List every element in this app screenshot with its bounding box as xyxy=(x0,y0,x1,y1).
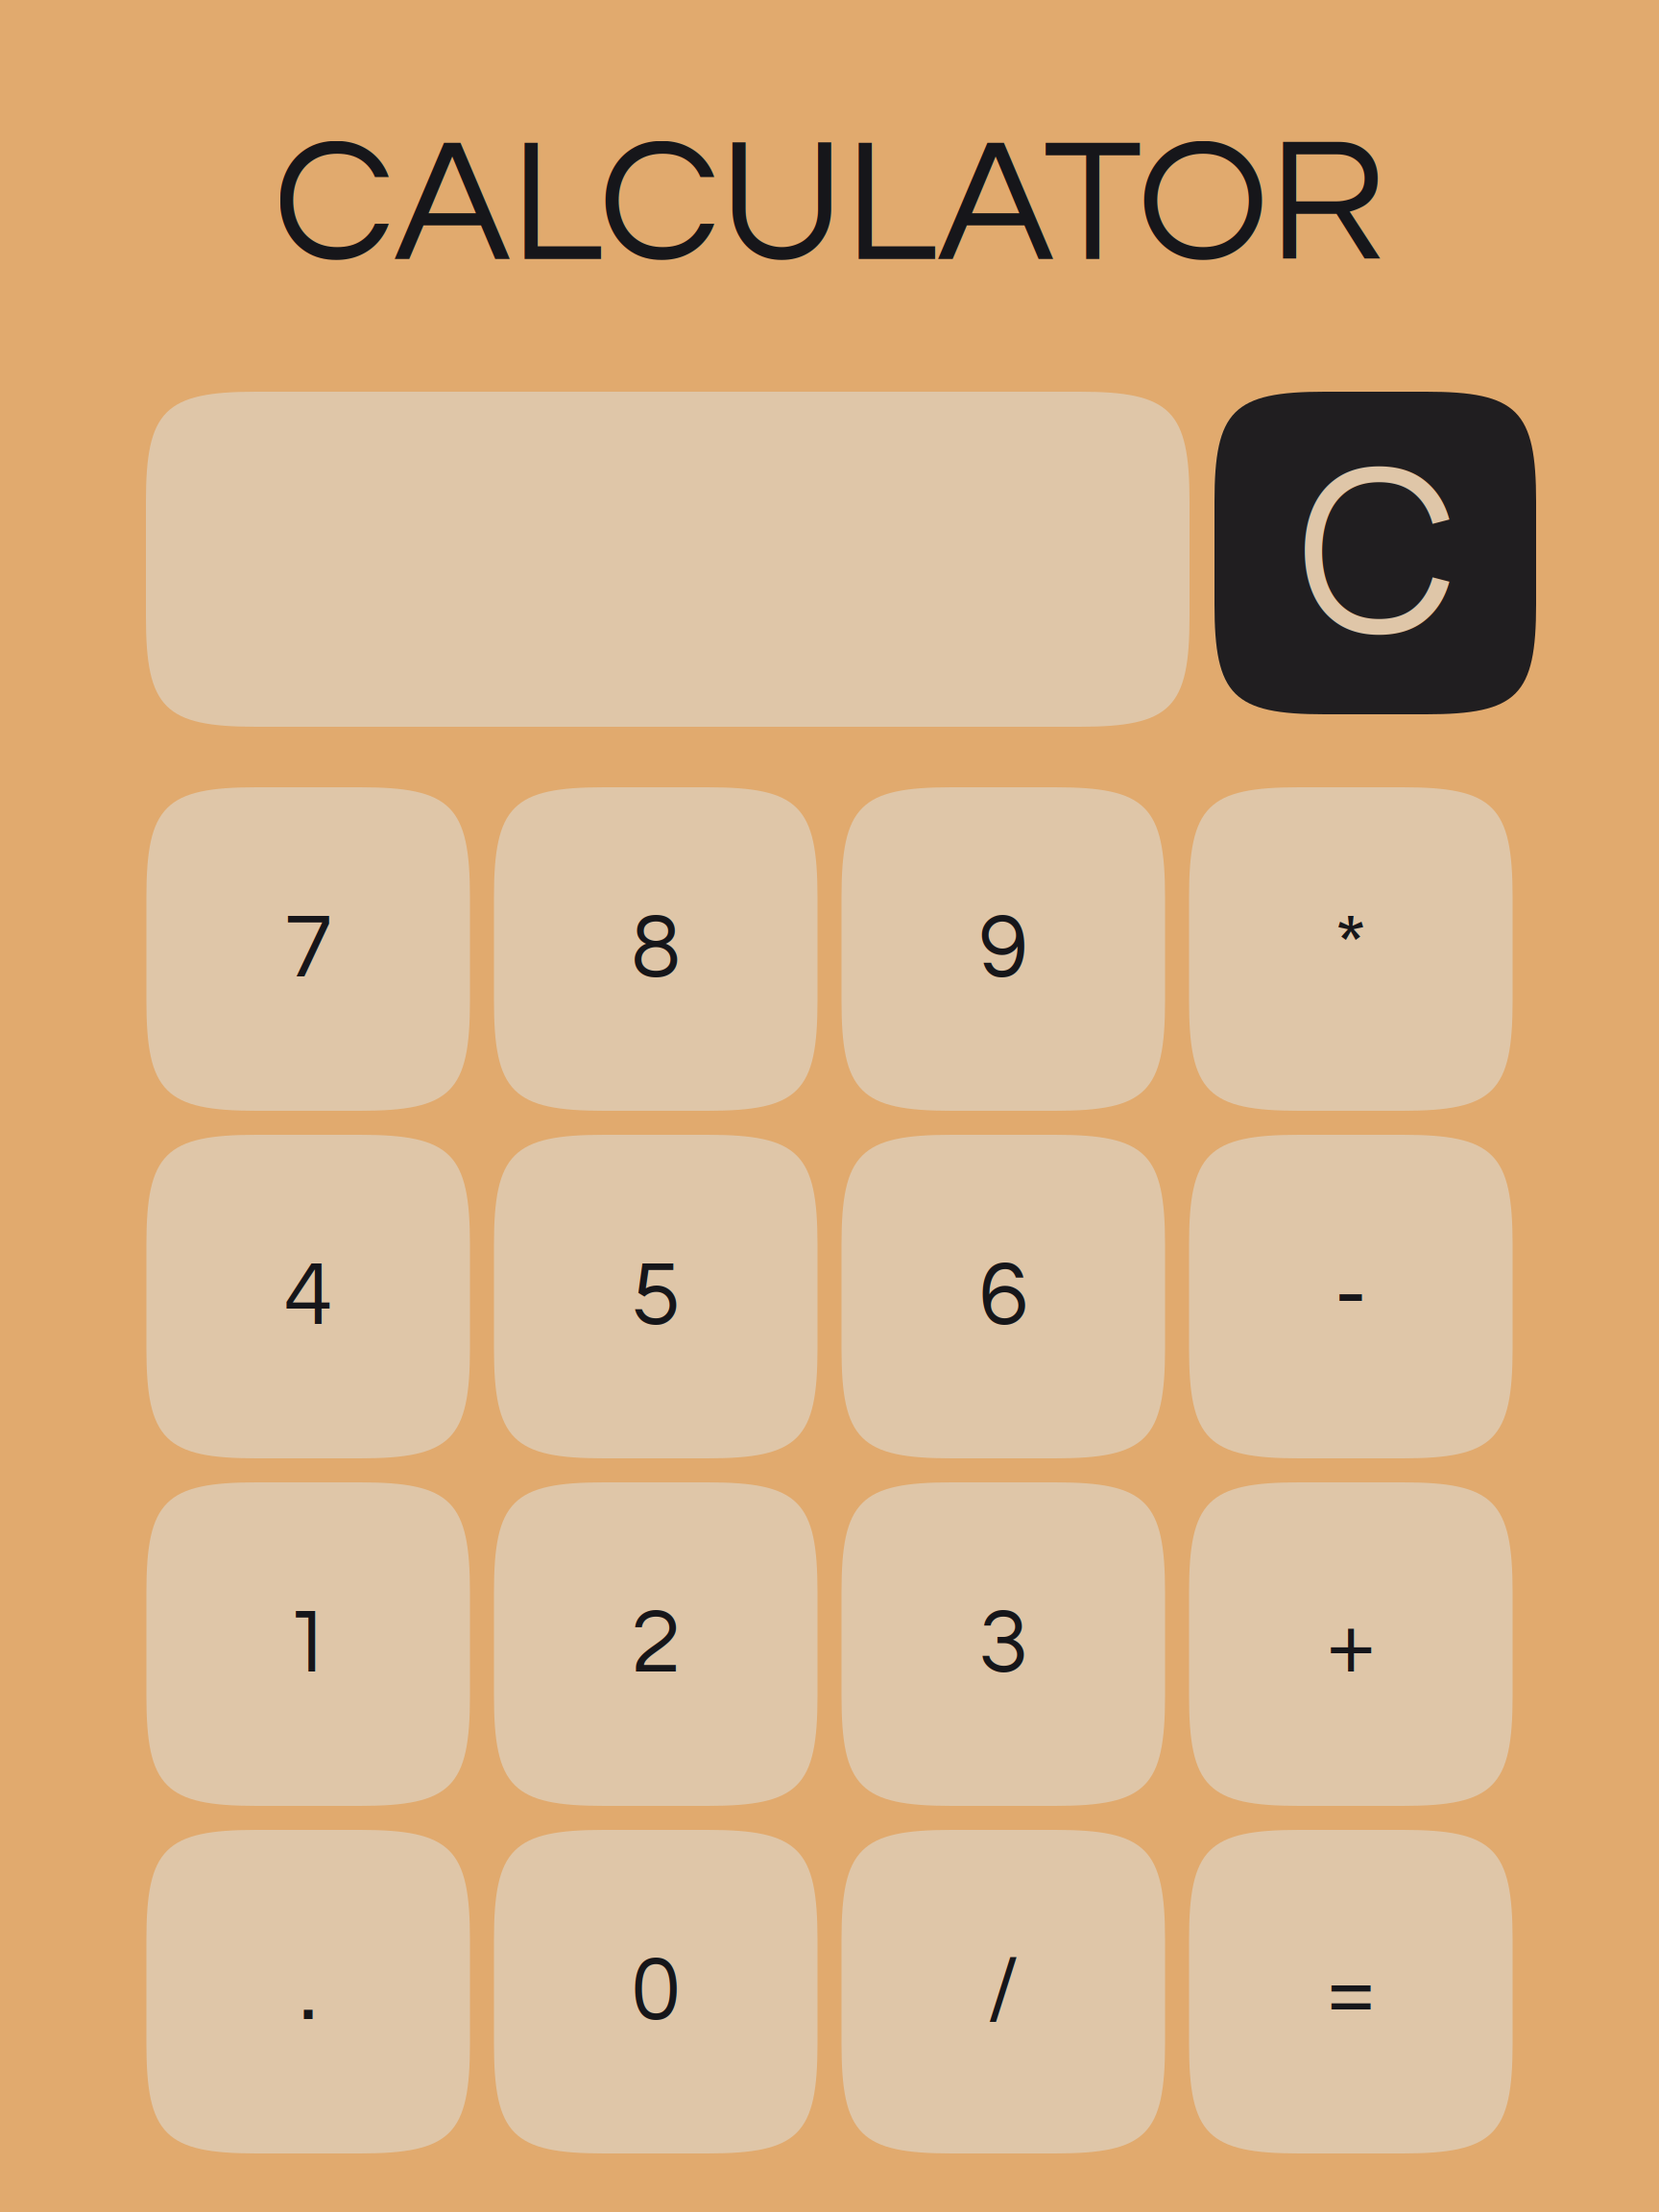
button[interactable]: 4 xyxy=(146,1135,470,1458)
button[interactable]: C xyxy=(1214,392,1536,714)
staticText: 9 xyxy=(979,903,1028,995)
staticText: 4 xyxy=(284,1250,333,1343)
staticText: 2 xyxy=(631,1598,680,1690)
button[interactable]: + xyxy=(1189,1482,1513,1806)
staticText: 3 xyxy=(979,1598,1028,1690)
staticText: * xyxy=(1334,903,1368,995)
button[interactable]: 2 xyxy=(494,1482,817,1806)
button[interactable]: / xyxy=(842,1830,1165,2153)
staticText: 5 xyxy=(631,1250,680,1343)
button[interactable]: - xyxy=(1189,1135,1513,1458)
staticText: - xyxy=(1334,1250,1367,1343)
button[interactable]: 1 xyxy=(146,1482,470,1806)
staticText: 1 xyxy=(284,1598,333,1690)
button[interactable]: 0 xyxy=(494,1830,817,2153)
staticText: 6 xyxy=(979,1250,1028,1343)
button[interactable]: = xyxy=(1189,1830,1513,2153)
staticText: 7 xyxy=(284,903,333,995)
staticText: . xyxy=(299,1945,317,2038)
staticText: 0 xyxy=(631,1945,680,2038)
button[interactable]: 3 xyxy=(842,1482,1165,1806)
staticText: 8 xyxy=(631,903,680,995)
button[interactable]: . xyxy=(146,1830,470,2153)
staticText: + xyxy=(1326,1598,1375,1690)
staticText: = xyxy=(1326,1945,1375,2038)
button[interactable]: 9 xyxy=(842,787,1165,1111)
staticText: / xyxy=(986,1945,1020,2038)
button[interactable]: 5 xyxy=(494,1135,817,1458)
button[interactable]: 7 xyxy=(146,787,470,1111)
button[interactable]: 8 xyxy=(494,787,817,1111)
button[interactable]: 6 xyxy=(842,1135,1165,1458)
staticText: CALCULATOR xyxy=(273,115,1386,296)
button[interactable]: * xyxy=(1189,787,1513,1111)
staticText: C xyxy=(1298,392,1458,698)
